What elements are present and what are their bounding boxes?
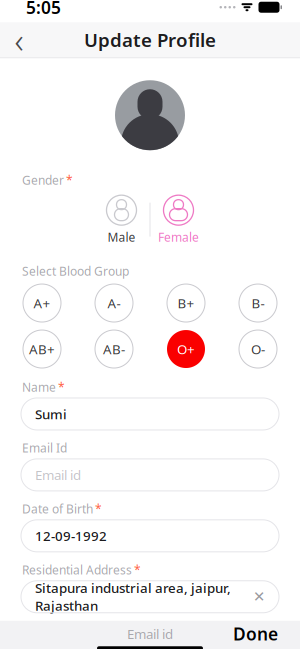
staticText: Email id bbox=[35, 466, 81, 484]
button[interactable]: O- bbox=[236, 327, 280, 371]
staticText: Sumi bbox=[35, 405, 67, 423]
staticText: Email Id bbox=[22, 440, 67, 456]
button[interactable]: B- bbox=[236, 281, 280, 325]
button[interactable]: AB- bbox=[92, 327, 136, 371]
button[interactable]: Sitapura industrial area, jaipur, Rajast… bbox=[0, 581, 300, 613]
button[interactable]: Change profile photo bbox=[115, 80, 185, 150]
button[interactable]: O+ bbox=[164, 327, 208, 371]
button[interactable]: Male bbox=[93, 194, 149, 245]
staticText: Select Blood Group bbox=[22, 263, 129, 279]
button[interactable]: A- bbox=[92, 281, 136, 325]
button[interactable]: Female bbox=[150, 194, 206, 245]
staticText: Name bbox=[22, 379, 56, 395]
staticText: O+ bbox=[177, 340, 195, 358]
staticText: AB- bbox=[103, 340, 125, 358]
button[interactable]: Sumi bbox=[0, 398, 300, 430]
staticText: Email id bbox=[127, 625, 173, 643]
staticText: * bbox=[58, 379, 65, 395]
staticText: Sitapura industrial area, jaipur, Rajast… bbox=[35, 579, 231, 614]
staticText: B- bbox=[251, 294, 264, 312]
button[interactable]: AB+ bbox=[20, 327, 64, 371]
staticText: Female bbox=[158, 229, 199, 245]
button[interactable]: A+ bbox=[20, 281, 64, 325]
staticText: A+ bbox=[33, 294, 50, 312]
staticText: Male bbox=[107, 229, 135, 245]
staticText: * bbox=[95, 501, 102, 517]
button[interactable]: Back bbox=[2, 23, 36, 57]
staticText: Update Profile bbox=[84, 27, 216, 52]
staticText: O- bbox=[251, 340, 265, 358]
button[interactable]: Email id bbox=[0, 459, 300, 491]
button[interactable]: 12-09-1992 bbox=[0, 520, 300, 552]
staticText: A- bbox=[107, 294, 120, 312]
staticText: Date of Birth bbox=[22, 501, 93, 517]
button[interactable]: B+ bbox=[164, 281, 208, 325]
button[interactable]: Done bbox=[225, 617, 286, 649]
staticText: AB+ bbox=[29, 340, 55, 358]
staticText: Gender bbox=[22, 172, 64, 188]
staticText: ‹ bbox=[14, 17, 23, 63]
staticText: ✕ bbox=[253, 588, 265, 605]
staticText: Done bbox=[233, 622, 278, 645]
staticText: 12-09-1992 bbox=[35, 527, 107, 545]
staticText: Residential Address bbox=[22, 562, 132, 578]
staticText: * bbox=[66, 172, 73, 188]
staticText: 5:05 bbox=[26, 0, 61, 19]
staticText: * bbox=[134, 562, 141, 578]
staticText: B+ bbox=[177, 294, 194, 312]
